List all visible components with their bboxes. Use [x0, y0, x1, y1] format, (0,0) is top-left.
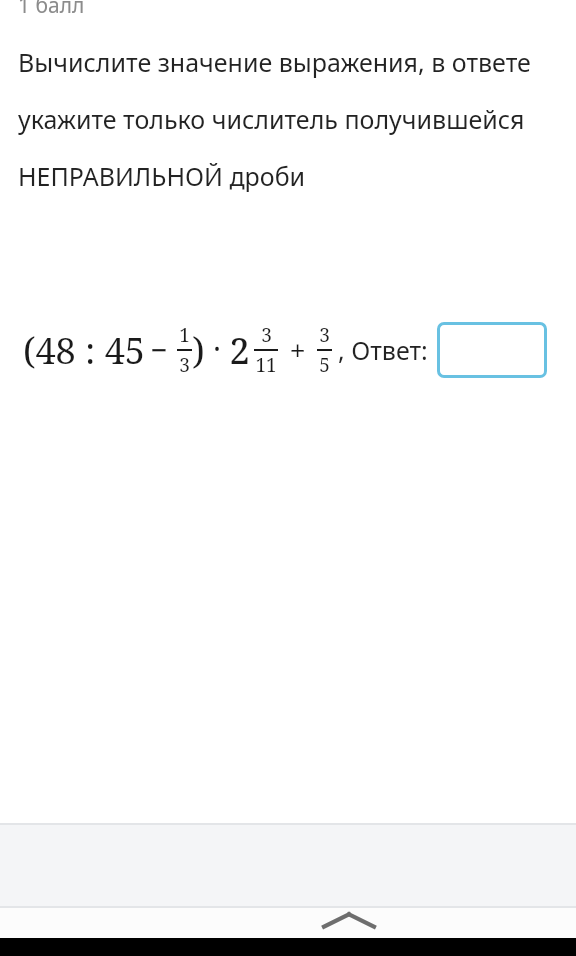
staticText: , Ответ:: [338, 333, 428, 367]
staticText: 3: [179, 352, 190, 378]
button[interactable]: Свернуть: [313, 908, 385, 938]
staticText: ): [192, 326, 205, 375]
staticText: −: [150, 329, 168, 370]
button[interactable]: Поле ответа: [437, 322, 547, 378]
staticText: 11: [255, 352, 277, 378]
staticText: 3: [261, 322, 272, 348]
staticText: 5: [319, 352, 330, 378]
staticText: ·: [213, 328, 221, 369]
staticText: НЕПРАВИЛЬНОЙ дроби: [18, 159, 306, 193]
staticText: (48 : 45: [18, 326, 150, 375]
staticText: 1 балл: [18, 0, 85, 20]
staticText: +: [289, 330, 306, 369]
staticText: 2: [229, 326, 250, 375]
staticText: 1: [179, 322, 190, 348]
staticText: укажите только числитель получившейся: [18, 102, 525, 136]
staticText: 3: [319, 322, 330, 348]
staticText: Вычислите значение выражения, в ответе: [18, 45, 531, 79]
